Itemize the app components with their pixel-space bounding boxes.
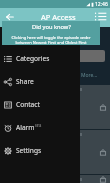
button[interactable]: Alarm xyxy=(0,116,80,139)
button[interactable] xyxy=(0,85,110,130)
staticText: Contact xyxy=(16,100,40,109)
button[interactable]: Sort order xyxy=(94,10,107,23)
button[interactable]: Contact xyxy=(0,93,80,116)
staticText: between Newest First and Oldest First xyxy=(15,40,87,45)
staticText: Clicking here will toggle the episode or… xyxy=(11,35,91,40)
button[interactable]: Share xyxy=(0,70,80,93)
button[interactable] xyxy=(0,130,110,175)
staticText: 12:46 xyxy=(95,1,108,8)
staticText: BETA xyxy=(35,124,42,128)
button[interactable]: Categories xyxy=(0,47,80,70)
staticText: Share xyxy=(16,77,34,86)
button[interactable]: Did you know? xyxy=(2,21,100,45)
staticText: Categories xyxy=(16,54,50,63)
staticText: Alarm xyxy=(16,123,35,132)
staticText: Did you know? xyxy=(32,23,71,31)
button[interactable]: Back xyxy=(2,9,18,25)
staticText: More... xyxy=(81,72,98,79)
staticText: AP Access xyxy=(41,12,76,22)
button[interactable] xyxy=(0,175,110,183)
staticText: Settings xyxy=(16,146,42,155)
button[interactable]: Settings xyxy=(0,139,80,162)
